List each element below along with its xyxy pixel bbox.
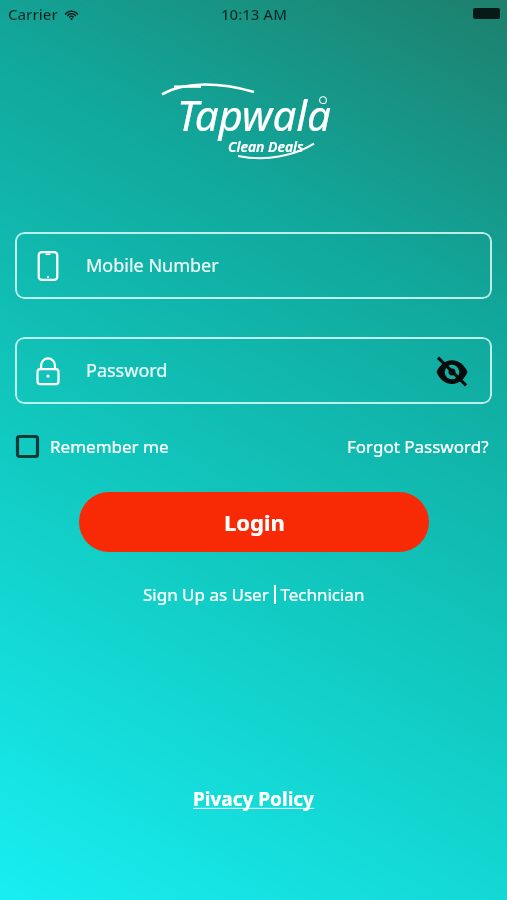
button[interactable]: Toggle password visibility <box>430 349 474 393</box>
button[interactable]: Forgot Password? <box>345 431 491 462</box>
staticText: Sign Up as User <box>143 583 274 606</box>
staticText: Tapwala <box>177 86 331 143</box>
staticText: Pivacy Policy <box>193 786 314 812</box>
staticText: Password <box>86 358 168 383</box>
button[interactable]: Sign Up as User <box>139 579 369 610</box>
button[interactable]: Login <box>79 492 429 552</box>
staticText: Mobile Number <box>86 253 219 278</box>
staticText: 10:13 AM <box>221 4 287 24</box>
button[interactable]: Remember me <box>16 431 169 462</box>
staticText: Carrier <box>8 4 58 24</box>
button[interactable]: Mobile Number <box>15 232 492 299</box>
staticText: Forgot Password? <box>347 435 489 458</box>
staticText: Clean Deals <box>228 137 304 154</box>
staticText: Technician <box>276 583 365 606</box>
button[interactable]: Password <box>15 337 492 404</box>
staticText: Login <box>224 507 285 537</box>
staticText: Remember me <box>50 435 169 458</box>
button[interactable]: Pivacy Policy <box>185 782 322 816</box>
